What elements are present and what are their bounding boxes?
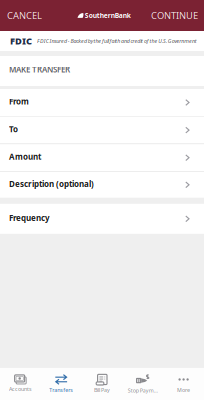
button[interactable]: To [0, 117, 204, 144]
staticText: SouthernBank [85, 11, 131, 20]
staticText: From [9, 96, 29, 107]
staticText: Bill Pay [94, 386, 110, 394]
staticText: Stop Paym… [128, 387, 158, 394]
staticText: Transfers [49, 386, 73, 394]
staticText: Amount [9, 151, 41, 162]
staticText: Accounts [9, 385, 32, 393]
button[interactable]: CANCEL [0, 0, 49, 31]
button[interactable]: Stop Paym… [122, 368, 163, 400]
button[interactable]: Transfers [41, 368, 82, 400]
button[interactable]: Bill Pay [82, 368, 122, 400]
button[interactable]: From [0, 89, 204, 116]
staticText: CANCEL [7, 9, 42, 22]
staticText: More [177, 386, 190, 394]
staticText: Frequency [9, 212, 50, 223]
staticText: FDIC Insured - Backed by the full faith … [37, 37, 197, 45]
staticText: CONTINUE [151, 9, 198, 22]
staticText: FDIC [10, 35, 32, 47]
button[interactable]: Accounts [0, 368, 41, 400]
button[interactable]: CONTINUE [145, 0, 204, 31]
button[interactable]: Amount [0, 144, 204, 171]
staticText: Description (optional) [9, 178, 94, 189]
button[interactable]: Description (optional) [0, 172, 204, 198]
staticText: MAKE TRANSFER [9, 64, 70, 75]
button[interactable]: More [163, 368, 204, 400]
button[interactable]: Frequency [0, 204, 204, 234]
staticText: To [9, 124, 18, 134]
